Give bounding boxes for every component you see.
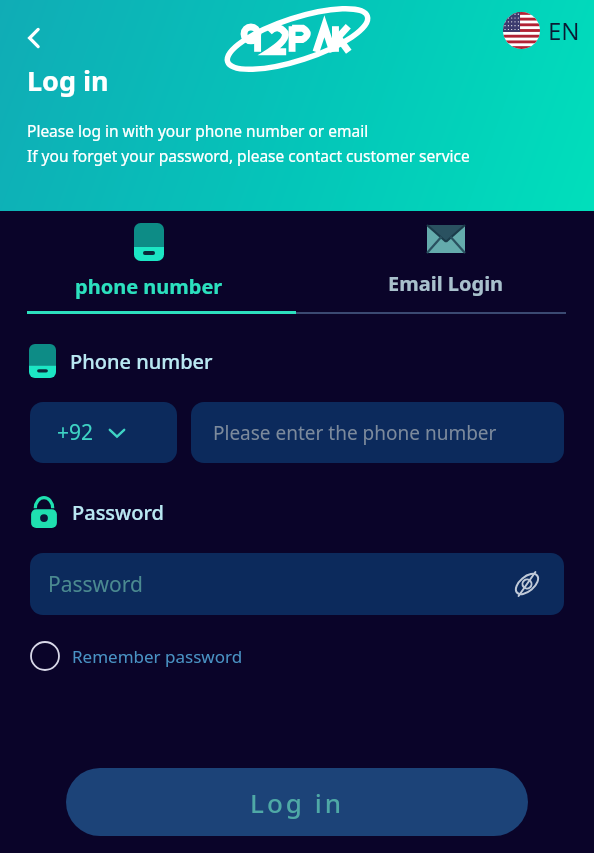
button[interactable]: Remember password bbox=[24, 635, 249, 677]
staticText: phone number bbox=[75, 273, 223, 300]
button[interactable]: EN bbox=[503, 12, 580, 49]
button[interactable]: Show password bbox=[510, 567, 544, 601]
button[interactable]: Please enter the phone number bbox=[191, 402, 564, 463]
staticText: Please enter the phone number bbox=[213, 420, 497, 446]
staticText: If you forget your password, please cont… bbox=[27, 145, 470, 166]
staticText: Password bbox=[48, 570, 143, 599]
button[interactable]: Password bbox=[30, 553, 564, 615]
button[interactable]: phone number bbox=[0, 211, 297, 311]
button[interactable]: +92 bbox=[30, 402, 177, 463]
staticText: Remember password bbox=[72, 645, 243, 668]
staticText: Phone number bbox=[70, 348, 213, 375]
button[interactable]: Log in bbox=[66, 768, 528, 836]
staticText: Please log in with your phone number or … bbox=[27, 120, 369, 141]
staticText: Log in bbox=[27, 62, 109, 99]
button[interactable]: Back bbox=[12, 16, 56, 60]
staticText: EN bbox=[548, 14, 580, 47]
button[interactable]: Email Login bbox=[297, 211, 594, 311]
staticText: Email Login bbox=[388, 270, 504, 297]
staticText: Password bbox=[72, 499, 164, 526]
staticText: Log in bbox=[250, 785, 344, 820]
staticText: +92 bbox=[57, 418, 94, 447]
